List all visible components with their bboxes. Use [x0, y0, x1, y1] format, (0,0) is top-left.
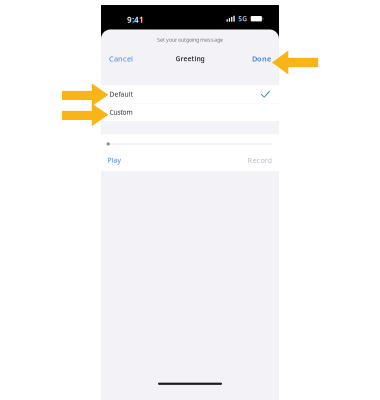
staticText: 9:41 — [127, 14, 144, 25]
staticText: Custom — [109, 108, 132, 117]
button[interactable]: Default — [101, 85, 279, 103]
button[interactable]: Custom — [101, 103, 279, 121]
staticText: Record — [247, 155, 272, 165]
staticText: Default — [109, 90, 132, 99]
staticText: 5G — [238, 14, 247, 23]
staticText: Cancel — [109, 54, 133, 64]
button[interactable]: Done — [241, 51, 271, 67]
button[interactable]: Play — [107, 155, 133, 165]
button[interactable]: Cancel — [109, 51, 143, 67]
button[interactable]: Record — [240, 155, 272, 165]
staticText: Done — [252, 54, 271, 64]
staticText: Play — [107, 156, 120, 165]
staticText: Greeting — [175, 54, 204, 63]
staticText: Set your outgoing message — [157, 36, 223, 43]
